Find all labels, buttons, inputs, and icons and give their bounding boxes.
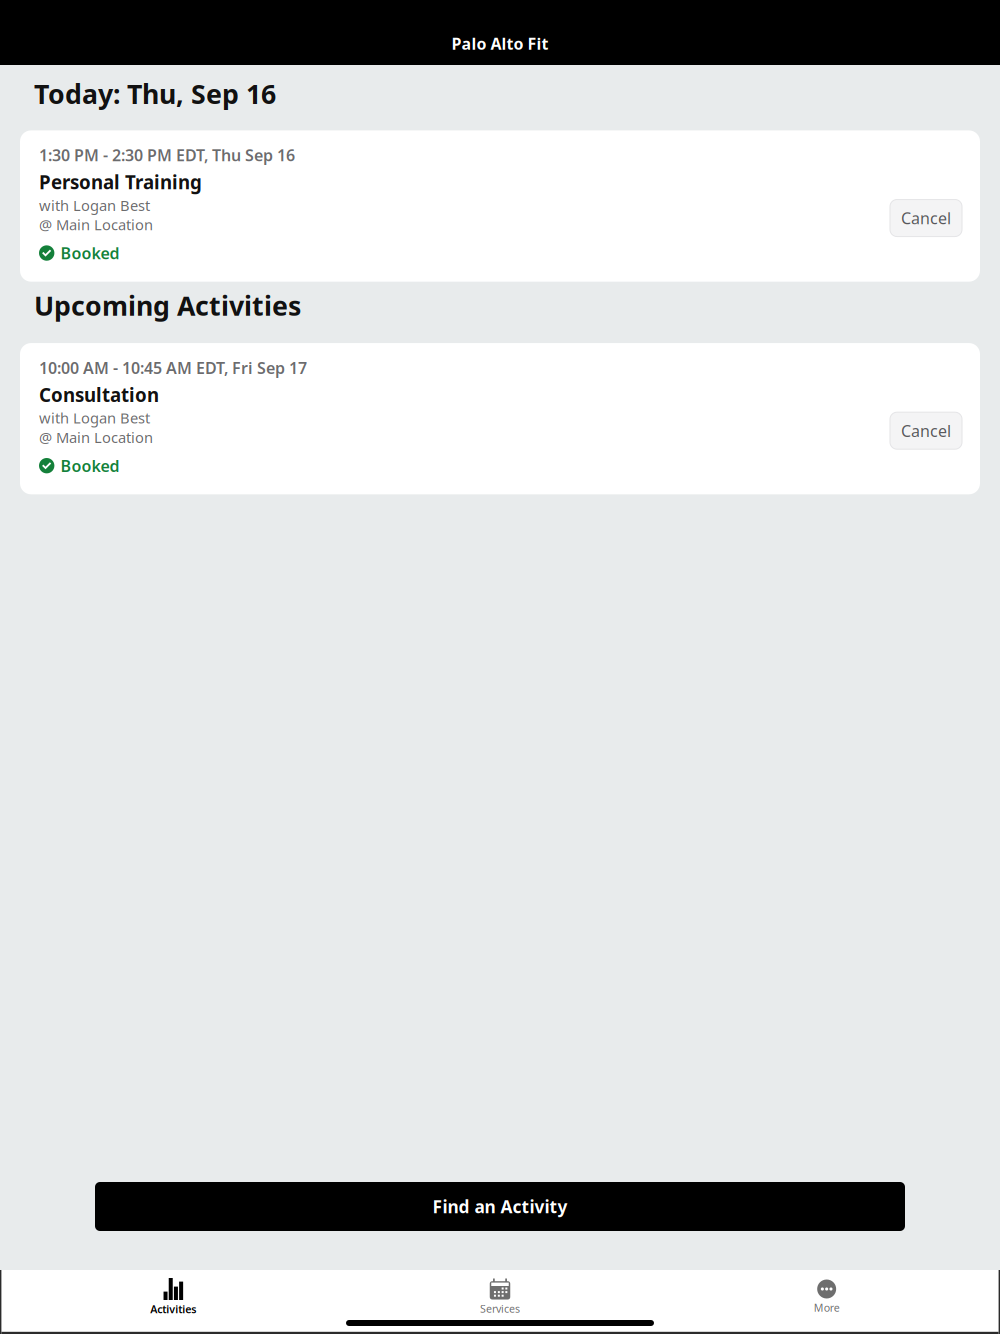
- staticText: with Logan Best: [39, 195, 150, 215]
- button[interactable]: Find an Activity: [95, 1182, 905, 1231]
- button[interactable]: Activities: [10, 1278, 337, 1316]
- button[interactable]: More: [663, 1279, 990, 1315]
- staticText: with Logan Best: [39, 408, 150, 428]
- staticText: Palo Alto Fit: [451, 33, 548, 54]
- staticText: Activities: [150, 1302, 196, 1316]
- staticText: @ Main Location: [39, 428, 153, 447]
- staticText: Cancel: [901, 207, 951, 229]
- button[interactable]: Services: [337, 1278, 663, 1316]
- staticText: Consultation: [39, 382, 159, 407]
- staticText: More: [814, 1300, 840, 1315]
- staticText: Personal Training: [39, 170, 202, 194]
- button[interactable]: Cancel: [890, 171, 962, 236]
- staticText: Services: [480, 1301, 520, 1316]
- staticText: @ Main Location: [39, 215, 153, 234]
- staticText: Booked: [60, 455, 119, 476]
- staticText: 10:00 AM - 10:45 AM EDT, Fri Sep 17: [39, 357, 307, 378]
- staticText: Upcoming Activities: [34, 288, 301, 323]
- staticText: 1:30 PM - 2:30 PM EDT, Thu Sep 16: [39, 144, 295, 166]
- staticText: Today: Thu, Sep 16: [34, 76, 276, 111]
- staticText: Booked: [60, 242, 119, 264]
- staticText: Cancel: [901, 420, 951, 441]
- staticText: Find an Activity: [432, 1195, 567, 1218]
- button[interactable]: Cancel: [890, 384, 962, 449]
